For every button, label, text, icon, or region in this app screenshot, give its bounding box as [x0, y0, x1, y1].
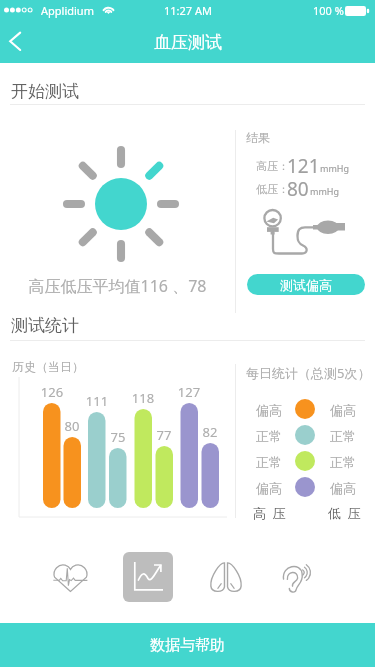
staticText: 低压：: [256, 182, 289, 196]
staticText: 80: [287, 176, 309, 202]
staticText: 数据与帮助: [150, 636, 225, 655]
staticText: 127: [169, 383, 209, 401]
staticText: mmHg: [310, 185, 340, 197]
button[interactable]: 数据与帮助: [0, 623, 375, 667]
staticText: 正常: [256, 428, 282, 444]
button[interactable]: Lungs: [201, 552, 251, 602]
staticText: 126: [32, 383, 72, 401]
staticText: 偏高: [330, 480, 356, 496]
staticText: 11:27 AM: [164, 3, 212, 18]
staticText: 偏高: [330, 402, 356, 418]
staticText: 正常: [330, 428, 356, 444]
staticText: 偏高: [256, 402, 282, 418]
staticText: 测试统计: [11, 315, 79, 336]
staticText: 历史（当日）: [12, 359, 84, 374]
staticText: 118: [123, 389, 163, 407]
staticText: 血压测试: [154, 32, 222, 53]
staticText: 每日统计（总测5次）: [246, 364, 371, 382]
staticText: 77: [144, 426, 184, 444]
staticText: 121: [287, 153, 320, 179]
button[interactable]: Trends: [123, 552, 173, 602]
button[interactable]: Hearing: [272, 552, 322, 602]
button[interactable]: 测试偏高: [247, 274, 365, 295]
button[interactable]: Heart rate: [45, 552, 95, 602]
staticText: 75: [98, 428, 138, 446]
staticText: 测试偏高: [280, 277, 332, 293]
staticText: 高压低压平均值116 、78: [0, 275, 235, 297]
staticText: 高 压: [253, 504, 286, 522]
staticText: 100 %: [313, 3, 344, 18]
staticText: 111: [77, 392, 117, 410]
staticText: 低 压: [328, 504, 361, 522]
button[interactable]: Back: [0, 22, 41, 63]
staticText: 80: [52, 417, 92, 435]
staticText: mmHg: [320, 162, 350, 174]
staticText: 结果: [246, 130, 270, 145]
staticText: Applidium: [41, 3, 94, 18]
staticText: 偏高: [256, 480, 282, 496]
staticText: 开始测试: [11, 81, 79, 102]
staticText: 82: [190, 423, 230, 441]
staticText: 高压：: [256, 159, 289, 173]
staticText: 正常: [330, 454, 356, 470]
staticText: 正常: [256, 454, 282, 470]
